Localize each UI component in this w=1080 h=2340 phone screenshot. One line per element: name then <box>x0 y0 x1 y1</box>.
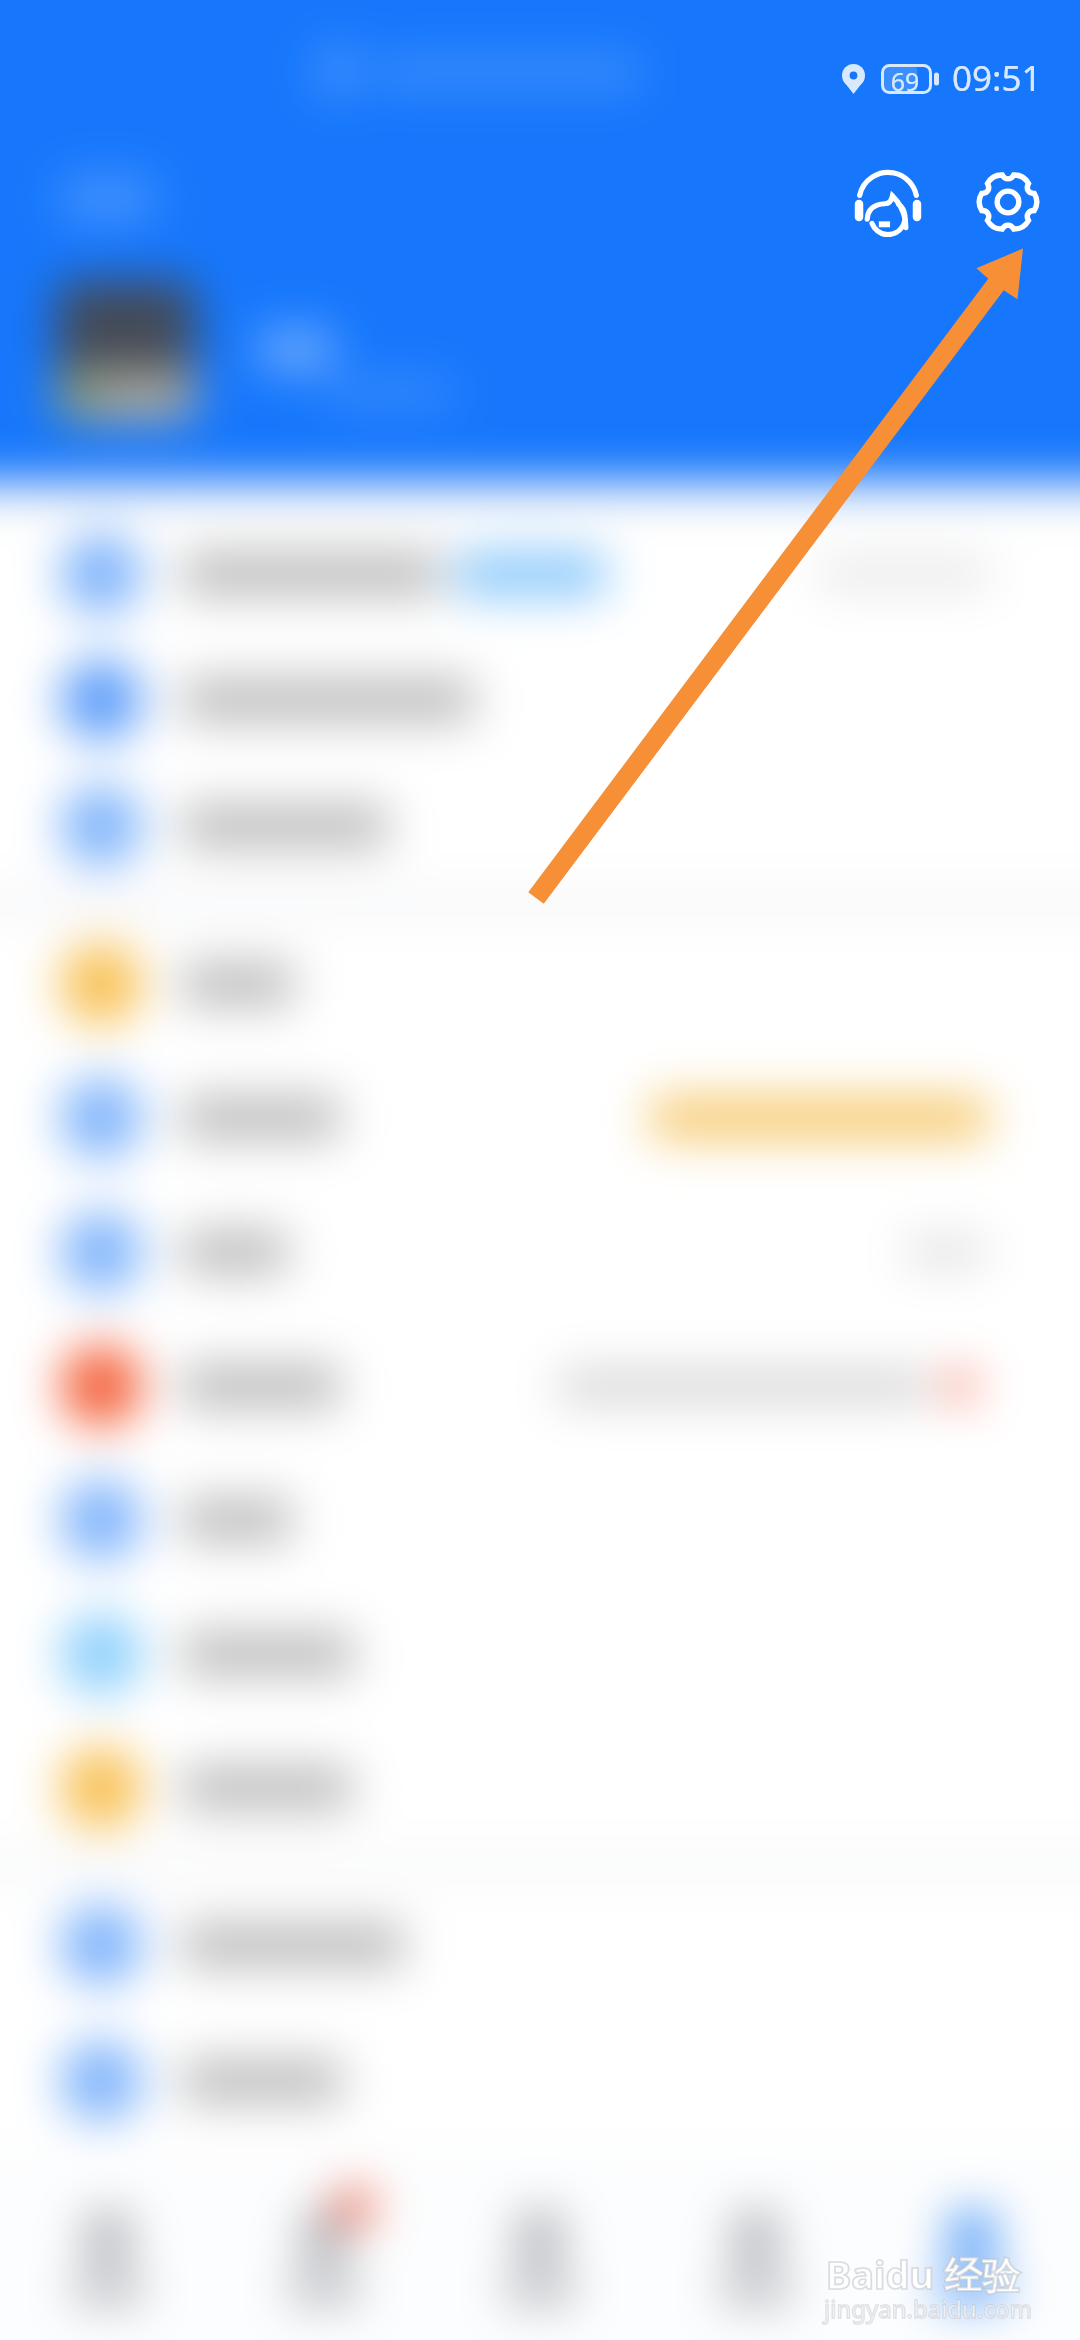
button[interactable] <box>648 2150 864 2340</box>
button[interactable] <box>0 1587 1080 1721</box>
button[interactable] <box>0 1721 1080 1855</box>
button[interactable] <box>864 2150 1080 2340</box>
staticText: Baidu 经验 <box>826 2248 1020 2300</box>
button[interactable] <box>0 637 1080 763</box>
button[interactable]: Settings <box>962 156 1054 248</box>
button[interactable] <box>0 1453 1080 1587</box>
button[interactable] <box>0 917 1080 1051</box>
button[interactable] <box>0 2013 1080 2149</box>
button[interactable] <box>0 1877 1080 2013</box>
staticText: jingyan.baidu.com <box>824 2292 1032 2325</box>
button[interactable] <box>0 511 1080 637</box>
button[interactable] <box>216 2150 432 2340</box>
button[interactable] <box>0 763 1080 889</box>
button[interactable] <box>432 2150 648 2340</box>
button[interactable] <box>0 272 1080 482</box>
staticText: jingyan.baidu.com <box>824 2292 1032 2325</box>
staticText: 69 <box>884 64 926 98</box>
staticText: 09:51 <box>952 54 1042 102</box>
button[interactable] <box>0 2150 216 2340</box>
staticText: Baidu 经验 <box>826 2248 1020 2300</box>
button[interactable] <box>0 1319 1080 1453</box>
button[interactable]: Customer service <box>842 160 934 252</box>
button[interactable] <box>0 1185 1080 1319</box>
button[interactable] <box>0 1051 1080 1185</box>
